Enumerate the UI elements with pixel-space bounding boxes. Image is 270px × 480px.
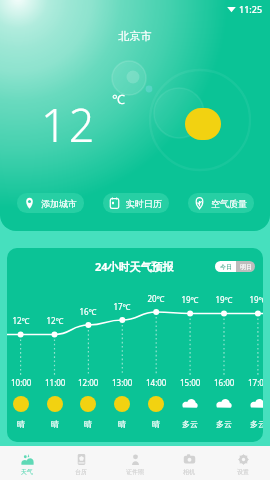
- staticText: 晴: [84, 419, 92, 429]
- button[interactable]: 今日: [215, 261, 236, 272]
- staticText: 16℃: [71, 306, 105, 317]
- staticText: 13:00: [112, 377, 133, 388]
- staticText: 台历: [75, 468, 87, 476]
- button[interactable]: 12:00: [71, 377, 105, 429]
- staticText: 19℃: [207, 294, 241, 305]
- button[interactable]: 空气质量: [188, 193, 254, 213]
- staticText: 北京市: [0, 29, 270, 43]
- staticText: 10:00: [11, 377, 32, 388]
- staticText: 今日: [220, 263, 232, 271]
- staticText: 晴: [17, 419, 25, 429]
- staticText: 晴: [152, 419, 160, 429]
- staticText: 17℃: [105, 301, 139, 312]
- button[interactable]: 实时日历: [103, 193, 169, 213]
- button[interactable]: 设置: [216, 446, 270, 480]
- button[interactable]: 添加城市: [17, 193, 84, 213]
- staticText: 11:00: [45, 377, 66, 388]
- button[interactable]: 11:00: [38, 377, 72, 429]
- staticText: 明日: [240, 263, 252, 271]
- button[interactable]: 台历: [54, 446, 108, 480]
- staticText: 19℃: [173, 294, 207, 305]
- staticText: 20℃: [139, 293, 173, 304]
- staticText: 24小时天气预报: [95, 259, 174, 274]
- staticText: 多云: [182, 419, 198, 429]
- staticText: 多云: [250, 419, 263, 429]
- staticText: 空气质量: [211, 198, 247, 209]
- staticText: 12℃: [7, 315, 38, 326]
- button[interactable]: 13:00: [105, 377, 139, 429]
- staticText: 证件照: [126, 468, 144, 476]
- staticText: 19℃: [241, 294, 263, 305]
- staticText: 17:00: [248, 377, 263, 388]
- staticText: ℃: [112, 90, 125, 108]
- staticText: 11:25: [239, 3, 263, 15]
- staticText: 天气: [21, 468, 33, 476]
- button[interactable]: 相机: [162, 446, 216, 480]
- staticText: 多云: [216, 419, 232, 429]
- button[interactable]: 10:00: [7, 377, 38, 429]
- button[interactable]: 15:00: [173, 377, 207, 429]
- staticText: 12: [41, 94, 97, 155]
- button[interactable]: 16:00: [207, 377, 241, 429]
- staticText: 添加城市: [41, 198, 77, 209]
- staticText: 晴: [118, 419, 126, 429]
- staticText: 12:00: [78, 377, 99, 388]
- button[interactable]: 17:00: [241, 377, 263, 429]
- staticText: 晴: [51, 419, 59, 429]
- staticText: 设置: [237, 468, 249, 476]
- staticText: 15:00: [180, 377, 201, 388]
- staticText: 12℃: [38, 315, 72, 326]
- button[interactable]: 证件照: [108, 446, 162, 480]
- button[interactable]: 明日: [236, 261, 255, 272]
- staticText: 实时日历: [126, 198, 162, 209]
- staticText: 14:00: [146, 377, 167, 388]
- staticText: 相机: [183, 468, 195, 476]
- staticText: 16:00: [214, 377, 235, 388]
- button[interactable]: 14:00: [139, 377, 173, 429]
- button[interactable]: 天气: [0, 446, 54, 480]
